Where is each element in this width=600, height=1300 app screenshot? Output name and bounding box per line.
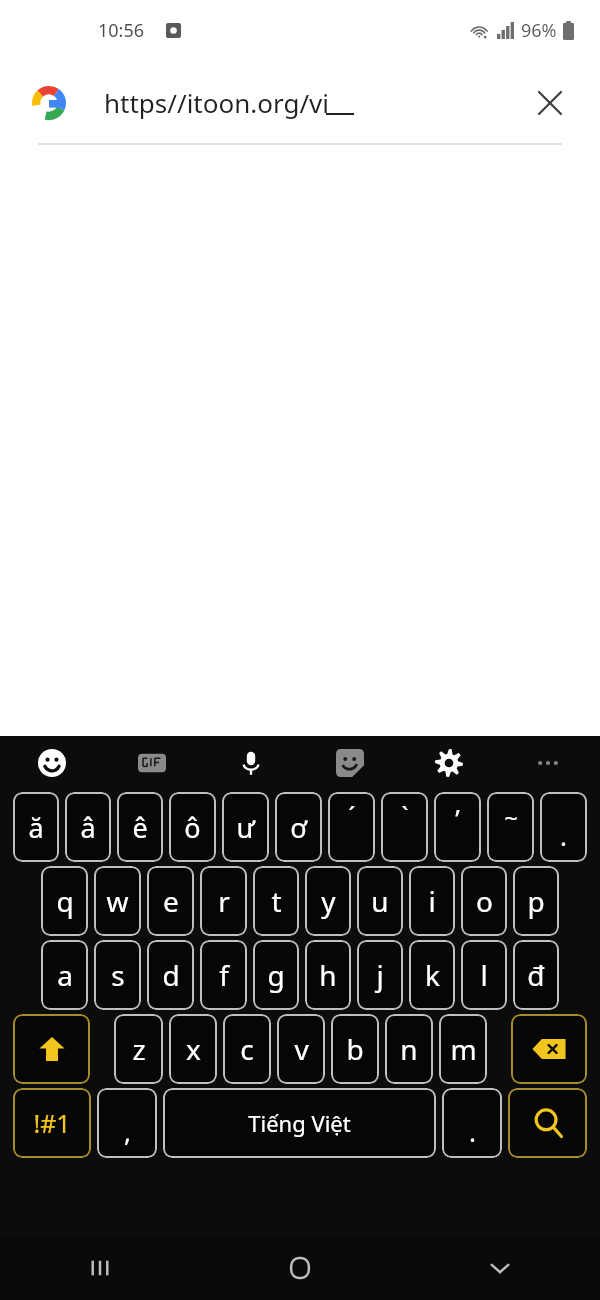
button[interactable]: Clear (528, 81, 572, 125)
button[interactable]: â (65, 792, 111, 862)
staticText: z (132, 1030, 146, 1068)
staticText: l (480, 956, 488, 994)
button[interactable]: Hide keyboard (400, 1236, 600, 1300)
button[interactable]: Voice input (229, 741, 273, 785)
button[interactable]: f (200, 940, 247, 1010)
staticText: a (57, 956, 73, 994)
staticText: r (218, 882, 230, 920)
staticText: Tiếng Việt (248, 1108, 351, 1138)
button[interactable]: p (513, 866, 559, 936)
button[interactable]: l (461, 940, 507, 1010)
button[interactable]: i (409, 866, 455, 936)
button[interactable]: Backspace (511, 1014, 587, 1084)
button[interactable]: , (97, 1088, 157, 1158)
staticText: h (319, 956, 337, 994)
staticText: k (425, 956, 440, 994)
staticText: c (240, 1030, 254, 1068)
button[interactable]: ư (222, 792, 269, 862)
staticText: f (219, 956, 229, 994)
staticText: x (186, 1030, 201, 1068)
button[interactable]: h (305, 940, 351, 1010)
button[interactable]: a (41, 940, 88, 1010)
button[interactable]: m (439, 1014, 487, 1084)
button[interactable]: x (169, 1014, 217, 1084)
button[interactable]: ´ (328, 792, 375, 862)
button[interactable]: c (223, 1014, 271, 1084)
staticText: ư (236, 809, 255, 846)
button[interactable]: j (357, 940, 403, 1010)
staticText: v (294, 1030, 309, 1068)
staticText: ´ (348, 798, 356, 833)
staticText: g (267, 956, 285, 994)
button[interactable]: ơ (275, 792, 322, 862)
staticText: ơ (290, 809, 307, 846)
button[interactable]: n (385, 1014, 433, 1084)
button[interactable]: g (253, 940, 299, 1010)
button[interactable]: ê (117, 792, 163, 862)
button[interactable]: Recent apps (0, 1236, 200, 1300)
staticText: i (428, 882, 436, 920)
staticText: u (371, 882, 389, 920)
staticText: ê (132, 809, 148, 846)
staticText: b (346, 1030, 364, 1068)
button[interactable]: t (253, 866, 299, 936)
button[interactable]: v (277, 1014, 325, 1084)
button[interactable]: r (200, 866, 247, 936)
button[interactable]: ô (169, 792, 216, 862)
button[interactable]: . (442, 1088, 502, 1158)
button[interactable]: b (331, 1014, 379, 1084)
button[interactable]: Search (508, 1088, 587, 1158)
button[interactable]: d (147, 940, 194, 1010)
staticText: 96% (521, 18, 557, 43)
button[interactable]: More options (526, 741, 570, 785)
staticText: p (527, 882, 545, 920)
staticText: ~ (504, 801, 518, 834)
button[interactable]: GIF (130, 741, 174, 785)
button[interactable]: ’ (434, 792, 481, 862)
button[interactable]: u (357, 866, 403, 936)
staticText: t (271, 882, 282, 920)
staticText: q (56, 882, 74, 920)
staticText: ă (28, 809, 44, 846)
button[interactable]: q (41, 866, 88, 936)
staticText: â (80, 809, 96, 846)
button[interactable]: Stickers (328, 741, 372, 785)
button[interactable]: đ (513, 940, 559, 1010)
staticText: ’ (455, 800, 460, 835)
button[interactable]: !#1 (13, 1088, 91, 1158)
staticText: e (163, 882, 179, 920)
button[interactable]: k (409, 940, 455, 1010)
staticText: w (106, 882, 129, 920)
button[interactable]: ă (13, 792, 59, 862)
staticText: j (376, 956, 384, 994)
button[interactable]: Home (200, 1236, 400, 1300)
staticText: o (476, 882, 493, 920)
button[interactable]: s (94, 940, 141, 1010)
button[interactable]: o (461, 866, 507, 936)
staticText: ` (401, 798, 409, 833)
button[interactable]: w (94, 866, 141, 936)
button[interactable]: . (540, 792, 587, 862)
button[interactable]: y (305, 866, 351, 936)
staticText: y (321, 882, 336, 920)
staticText: n (400, 1030, 418, 1068)
staticText: 10:56 (98, 18, 145, 43)
button[interactable]: e (147, 866, 194, 936)
button[interactable]: Shift (13, 1014, 90, 1084)
staticText: đ (527, 956, 545, 994)
staticText: d (162, 956, 180, 994)
staticText: !#1 (33, 1106, 71, 1140)
staticText: s (111, 956, 125, 994)
button[interactable]: Emoji (30, 741, 74, 785)
staticText: https//itoon.org/vi (104, 85, 330, 120)
button[interactable]: ~ (487, 792, 534, 862)
staticText: ô (184, 809, 201, 846)
staticText: , (124, 1114, 131, 1149)
button[interactable]: ` (381, 792, 428, 862)
button[interactable]: z (114, 1014, 163, 1084)
staticText: . (560, 818, 567, 853)
staticText: m (450, 1030, 477, 1068)
button[interactable]: Settings (427, 741, 471, 785)
button[interactable]: Space (163, 1088, 436, 1158)
staticText: . (469, 1114, 476, 1149)
